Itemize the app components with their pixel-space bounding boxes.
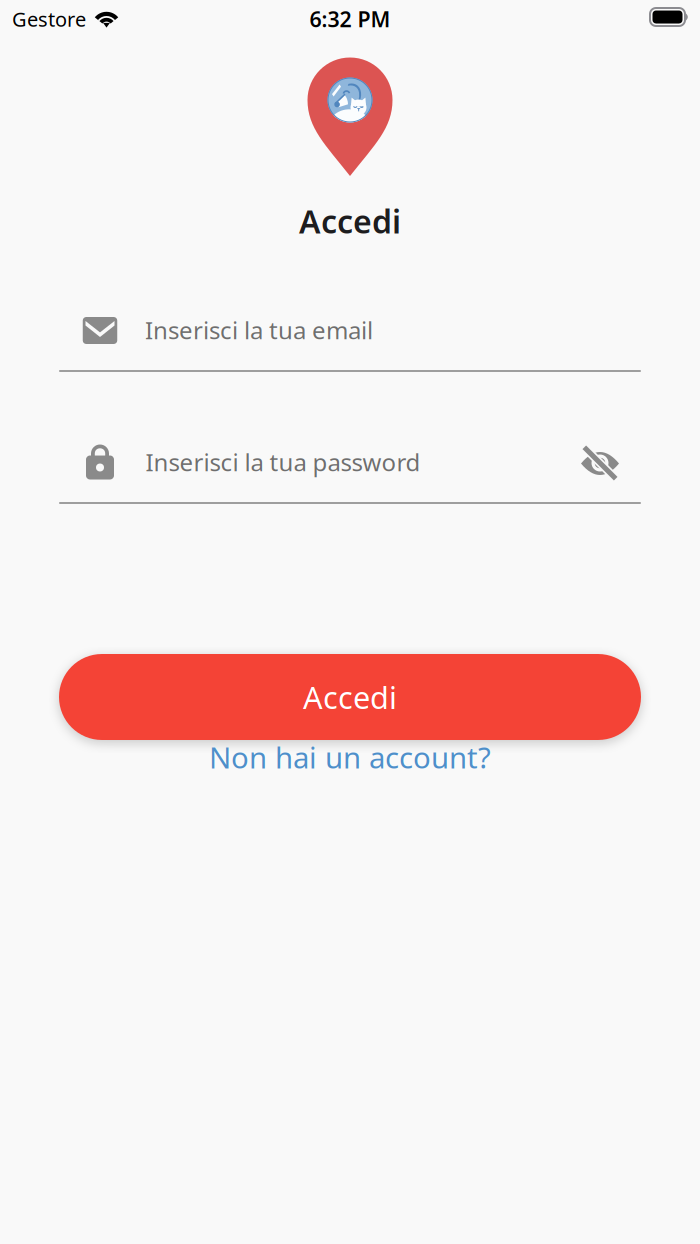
button[interactable]: Mostra password — [580, 445, 620, 481]
staticText: Accedi — [303, 677, 397, 717]
button[interactable]: Non hai un account? — [209, 737, 491, 776]
staticText: Accedi — [299, 200, 401, 242]
staticText: Gestore — [12, 6, 86, 32]
staticText: Inserisci la tua password — [145, 446, 420, 478]
staticText: Non hai un account? — [209, 737, 491, 776]
staticText: 6:32 PM — [309, 5, 390, 33]
button[interactable]: Accedi — [59, 654, 641, 740]
staticText: Inserisci la tua email — [145, 314, 373, 346]
